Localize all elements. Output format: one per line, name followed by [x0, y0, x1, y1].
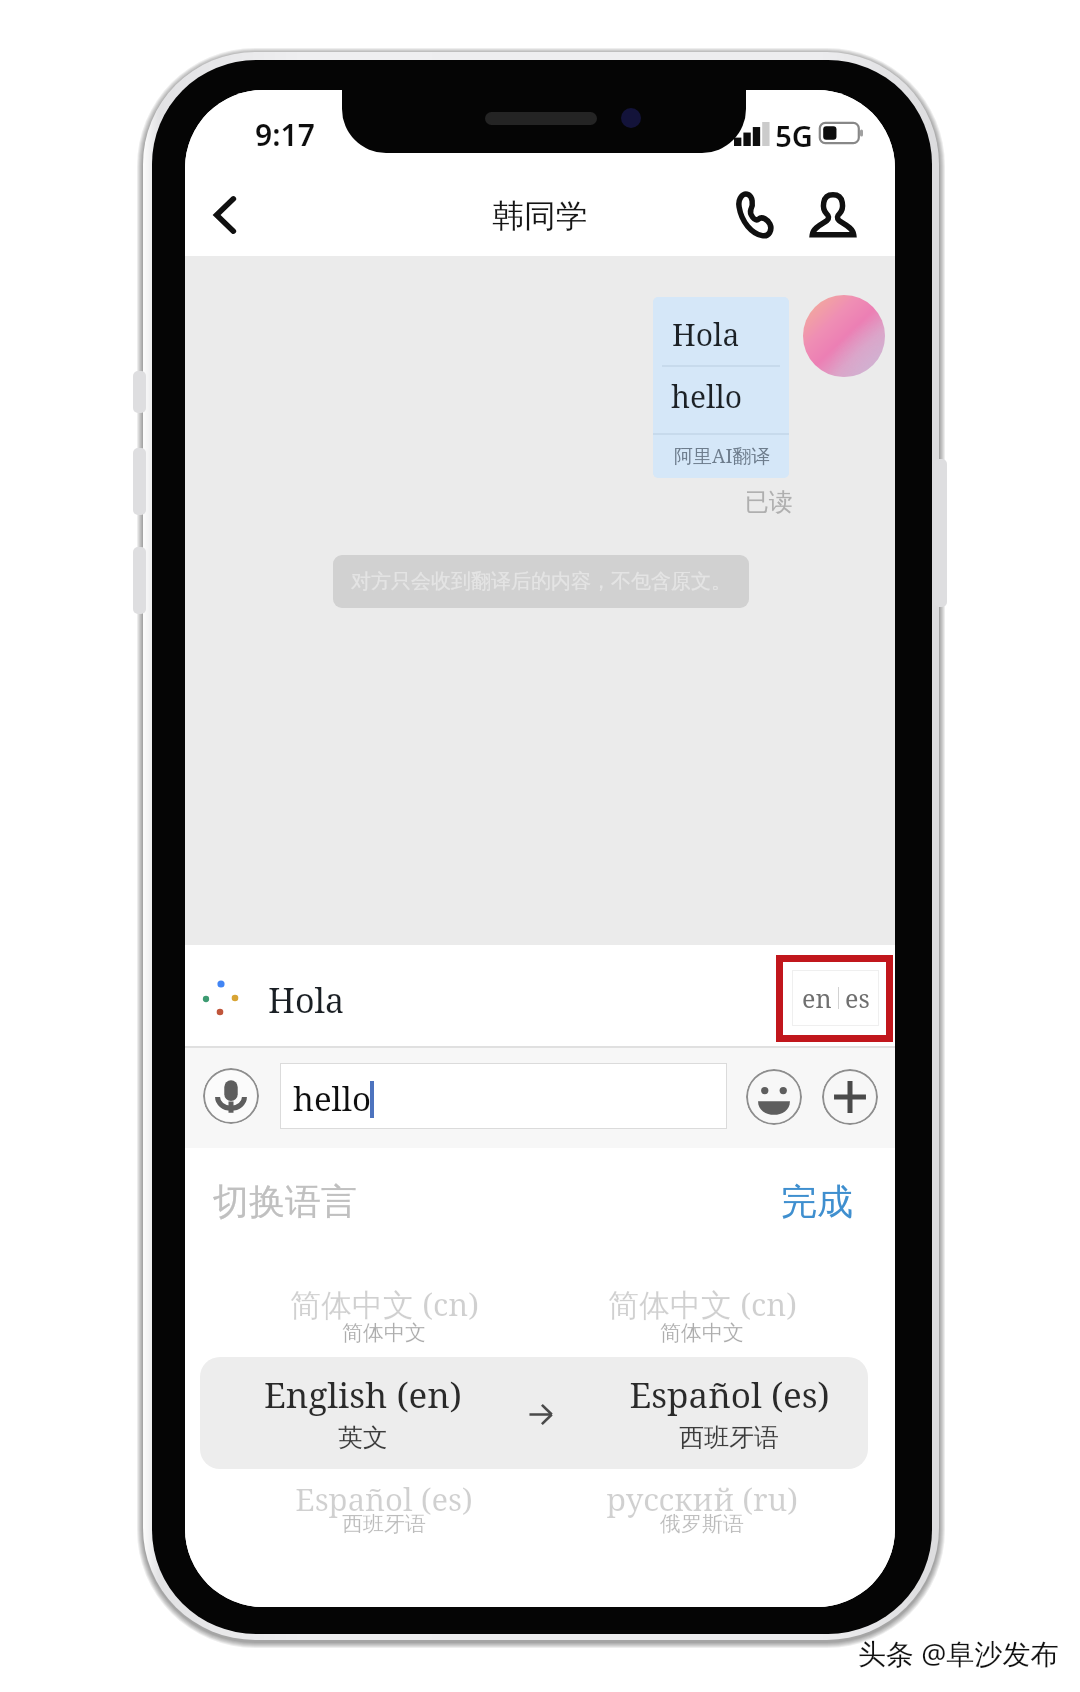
- staticText: Hola: [672, 314, 740, 355]
- button[interactable]: Contact info: [810, 194, 856, 236]
- button[interactable]: Hola: [185, 945, 895, 1045]
- staticText: Español (es): [629, 1371, 830, 1418]
- button[interactable]: 切换语言: [213, 1179, 357, 1224]
- button[interactable]: Español / русский: [200, 1469, 868, 1543]
- staticText: Hola: [268, 977, 345, 1023]
- staticText: es: [845, 981, 870, 1015]
- button[interactable]: Switch languages en to es: [792, 970, 879, 1026]
- staticText: 头条 @阜沙发布: [858, 1634, 1059, 1672]
- staticText: 5G: [775, 116, 813, 155]
- button[interactable]: Emoji: [746, 1069, 802, 1125]
- staticText: русский (ru): [606, 1478, 798, 1519]
- button[interactable]: More: [822, 1069, 878, 1125]
- staticText: 西班牙语: [679, 1422, 779, 1453]
- button[interactable]: English to Español: [200, 1357, 868, 1469]
- staticText: 切换语言: [213, 1179, 357, 1224]
- staticText: 简体中文 (cn): [608, 1283, 797, 1324]
- staticText: 完成: [781, 1179, 853, 1224]
- staticText: 韩同学: [492, 196, 588, 236]
- staticText: hello: [671, 376, 743, 417]
- staticText: English (en): [264, 1371, 462, 1418]
- button[interactable]: Avatar: [803, 295, 885, 377]
- button[interactable]: 完成: [781, 1179, 853, 1224]
- staticText: 9:17: [255, 114, 315, 154]
- button[interactable]: 简体中文: [200, 1283, 868, 1357]
- staticText: 简体中文: [660, 1320, 744, 1346]
- button[interactable]: hello: [280, 1063, 727, 1129]
- staticText: 简体中文: [342, 1320, 426, 1346]
- staticText: 对方只会收到翻译后的内容，不包含原文。: [351, 569, 731, 594]
- button[interactable]: Call: [737, 192, 772, 237]
- staticText: 阿里AI翻译: [674, 443, 771, 469]
- staticText: 西班牙语: [342, 1511, 426, 1537]
- staticText: hello: [293, 1076, 372, 1121]
- staticText: en: [802, 981, 832, 1015]
- staticText: 俄罗斯语: [660, 1511, 744, 1537]
- staticText: 已读: [745, 487, 793, 517]
- staticText: Español (es): [295, 1478, 473, 1519]
- button[interactable]: Voice input: [203, 1068, 259, 1124]
- button[interactable]: Back: [195, 185, 255, 245]
- button[interactable]: Hola: [653, 297, 789, 478]
- staticText: 英文: [338, 1422, 388, 1453]
- staticText: 简体中文 (cn): [290, 1283, 479, 1324]
